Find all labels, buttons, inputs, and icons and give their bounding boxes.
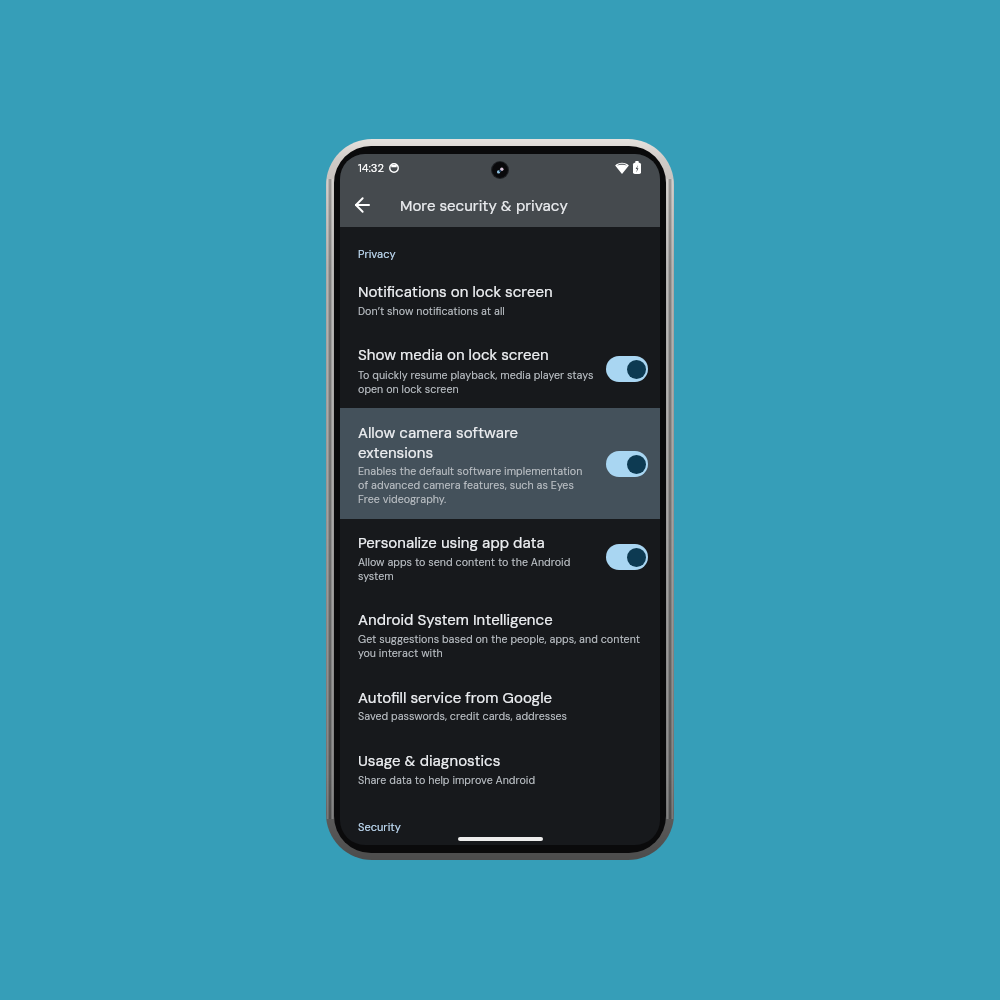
button[interactable] — [340, 602, 660, 664]
button[interactable] — [340, 526, 660, 586]
staticText: To quickly resume playback, media player… — [358, 368, 594, 396]
staticText: Show media on lock screen — [358, 345, 549, 365]
button[interactable] — [340, 274, 660, 330]
button[interactable] — [340, 743, 660, 798]
staticText: 14:32 — [358, 161, 384, 175]
button[interactable]: Toggle setting — [603, 354, 651, 384]
staticText: More security & privacy — [400, 196, 568, 216]
staticText: Android System Intelligence — [358, 610, 553, 630]
staticText: Usage & diagnostics — [358, 751, 501, 771]
staticText: Security — [358, 820, 401, 834]
button[interactable] — [340, 338, 660, 400]
button[interactable] — [340, 680, 660, 735]
button[interactable]: Toggle setting — [603, 542, 651, 572]
staticText: Privacy — [358, 247, 396, 261]
staticText: Autofill service from Google — [358, 688, 553, 708]
staticText: Enables the default software implementat… — [358, 464, 583, 505]
staticText: Don’t show notifications at all — [358, 304, 505, 318]
staticText: Saved passwords, credit cards, addresses — [358, 709, 568, 723]
staticText: Notifications on lock screen — [358, 282, 553, 302]
staticText: Get suggestions based on the people, app… — [358, 632, 641, 660]
button[interactable] — [340, 406, 660, 517]
staticText: Personalize using app data — [358, 533, 545, 553]
staticText: Share data to help improve Android — [358, 773, 536, 787]
button[interactable]: Back — [344, 187, 380, 223]
staticText: Allow camera software extensions — [358, 423, 518, 463]
staticText: Allow apps to send content to the Androi… — [358, 555, 571, 583]
button[interactable]: Toggle setting — [603, 449, 651, 479]
